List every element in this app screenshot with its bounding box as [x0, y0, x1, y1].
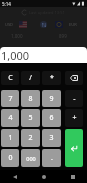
- staticText: 899: [59, 33, 67, 39]
- staticText: +: [72, 113, 77, 123]
- button[interactable]: 000: [21, 149, 40, 167]
- button[interactable]: 4: [1, 109, 19, 127]
- button[interactable]: -: [65, 90, 83, 107]
- staticText: .: [51, 153, 53, 163]
- staticText: 9: [49, 94, 54, 104]
- button[interactable]: *: [42, 71, 61, 85]
- button[interactable]: 6: [42, 109, 61, 127]
- button[interactable]: 0: [1, 149, 19, 167]
- button[interactable]: 1: [1, 129, 19, 147]
- button[interactable]: /: [21, 71, 40, 85]
- staticText: 2: [28, 133, 33, 143]
- staticText: EUR: [69, 22, 77, 27]
- button[interactable]: 5: [21, 109, 40, 127]
- button[interactable]: Recents: [58, 170, 87, 183]
- staticText: 5:14: [2, 1, 11, 7]
- button[interactable]: 7: [1, 90, 19, 107]
- button[interactable]: 8: [21, 90, 40, 107]
- staticText: 0: [8, 153, 13, 163]
- staticText: -: [73, 94, 76, 104]
- staticText: 1: [8, 133, 13, 143]
- button[interactable]: 2: [21, 129, 40, 147]
- staticText: 1,000: [1, 48, 30, 63]
- staticText: /: [29, 73, 32, 83]
- staticText: *: [50, 73, 54, 83]
- button[interactable]: Backspace: [65, 71, 83, 85]
- button[interactable]: Home: [29, 170, 58, 183]
- staticText: 1,000: [11, 33, 23, 39]
- button[interactable]: Swap currencies: [40, 21, 47, 28]
- staticText: 6: [49, 113, 54, 123]
- staticText: 000: [26, 155, 36, 162]
- button[interactable]: +: [65, 109, 83, 127]
- staticText: 8: [28, 94, 33, 104]
- staticText: Last updated 13:51: [29, 10, 65, 15]
- staticText: USD: [5, 22, 14, 27]
- staticText: 3: [49, 133, 54, 143]
- button[interactable]: Equals: [65, 129, 83, 167]
- staticText: 7: [8, 94, 13, 104]
- staticText: 5: [28, 113, 33, 123]
- button[interactable]: 9: [42, 90, 61, 107]
- button[interactable]: 3: [42, 129, 61, 147]
- button[interactable]: .: [42, 149, 61, 167]
- staticText: C: [8, 73, 13, 83]
- button[interactable]: USD: [5, 18, 27, 30]
- button[interactable]: EUR: [55, 18, 77, 30]
- staticText: 4: [8, 113, 13, 123]
- button[interactable]: C: [1, 71, 19, 85]
- button[interactable]: Back: [0, 170, 29, 183]
